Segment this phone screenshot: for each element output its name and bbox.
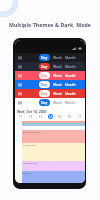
button[interactable]: Week xyxy=(53,64,62,69)
other: Menu xyxy=(18,92,22,96)
staticText: 16 xyxy=(68,115,72,119)
staticText: Day xyxy=(41,91,48,96)
staticText: Multiple Themes & Dark Mode xyxy=(0,21,100,28)
button[interactable]: Project sync xyxy=(22,143,85,161)
other: Menu xyxy=(18,56,22,60)
other: Menu xyxy=(18,101,22,105)
button[interactable]: Dinner xyxy=(22,171,85,183)
staticText: Wed, Oct 14, 2020 xyxy=(17,109,47,114)
button[interactable]: Month xyxy=(65,100,76,105)
button[interactable]: Day xyxy=(41,91,48,96)
staticText: Team standup xyxy=(23,123,39,125)
button[interactable]: Day xyxy=(41,82,48,87)
staticText: 15 xyxy=(58,115,62,119)
staticText: 14 xyxy=(49,115,53,119)
button[interactable]: Week xyxy=(53,100,62,105)
staticText: Day xyxy=(41,100,48,105)
staticText: Day xyxy=(41,55,48,60)
button[interactable]: Menu xyxy=(15,62,85,71)
button[interactable]: Month xyxy=(65,73,76,78)
button[interactable]: Menu xyxy=(15,53,85,62)
staticText: 11 xyxy=(19,115,23,119)
button[interactable]: 17 xyxy=(77,114,82,119)
staticText: Day xyxy=(41,64,48,69)
button[interactable]: 13 xyxy=(38,114,43,119)
button[interactable]: 15 xyxy=(57,114,62,119)
button[interactable]: Menu xyxy=(15,89,85,98)
staticText: Day xyxy=(41,82,48,87)
staticText: Day xyxy=(41,73,48,78)
button[interactable]: Day xyxy=(41,73,48,78)
staticText: Lunch with Sam xyxy=(23,130,41,133)
button[interactable]: Month xyxy=(65,55,76,60)
staticText: 17 xyxy=(78,115,82,119)
button[interactable]: 16 xyxy=(67,114,72,119)
staticText: Project sync xyxy=(23,143,37,146)
staticText: 13 xyxy=(39,115,43,119)
button[interactable]: 14 xyxy=(48,114,53,119)
button[interactable]: 11 xyxy=(18,114,23,119)
button[interactable]: Month xyxy=(65,82,76,87)
button[interactable]: Week xyxy=(53,82,62,87)
button[interactable]: Lunch with Sam xyxy=(22,130,85,144)
button[interactable]: Month xyxy=(65,64,76,69)
button[interactable]: Menu xyxy=(15,71,85,80)
other: Menu xyxy=(18,83,22,87)
button[interactable]: Week xyxy=(53,91,62,96)
button[interactable]: Day xyxy=(41,100,48,105)
other: Menu xyxy=(18,65,22,69)
button[interactable]: Menu xyxy=(15,98,85,107)
button[interactable]: Week xyxy=(53,55,62,60)
staticText: Gym session xyxy=(23,161,38,164)
staticText: Dinner xyxy=(23,171,31,174)
button[interactable]: Day xyxy=(41,64,48,69)
button[interactable]: Week xyxy=(53,73,62,78)
staticText: 12 xyxy=(29,115,33,119)
button[interactable]: Team standup xyxy=(22,123,85,125)
other: Menu xyxy=(18,74,22,78)
button[interactable]: Day xyxy=(41,55,48,60)
button[interactable]: Month xyxy=(65,91,76,96)
button[interactable]: Gym session xyxy=(22,161,85,171)
button[interactable]: Menu xyxy=(15,80,85,89)
button[interactable]: 12 xyxy=(28,114,33,119)
